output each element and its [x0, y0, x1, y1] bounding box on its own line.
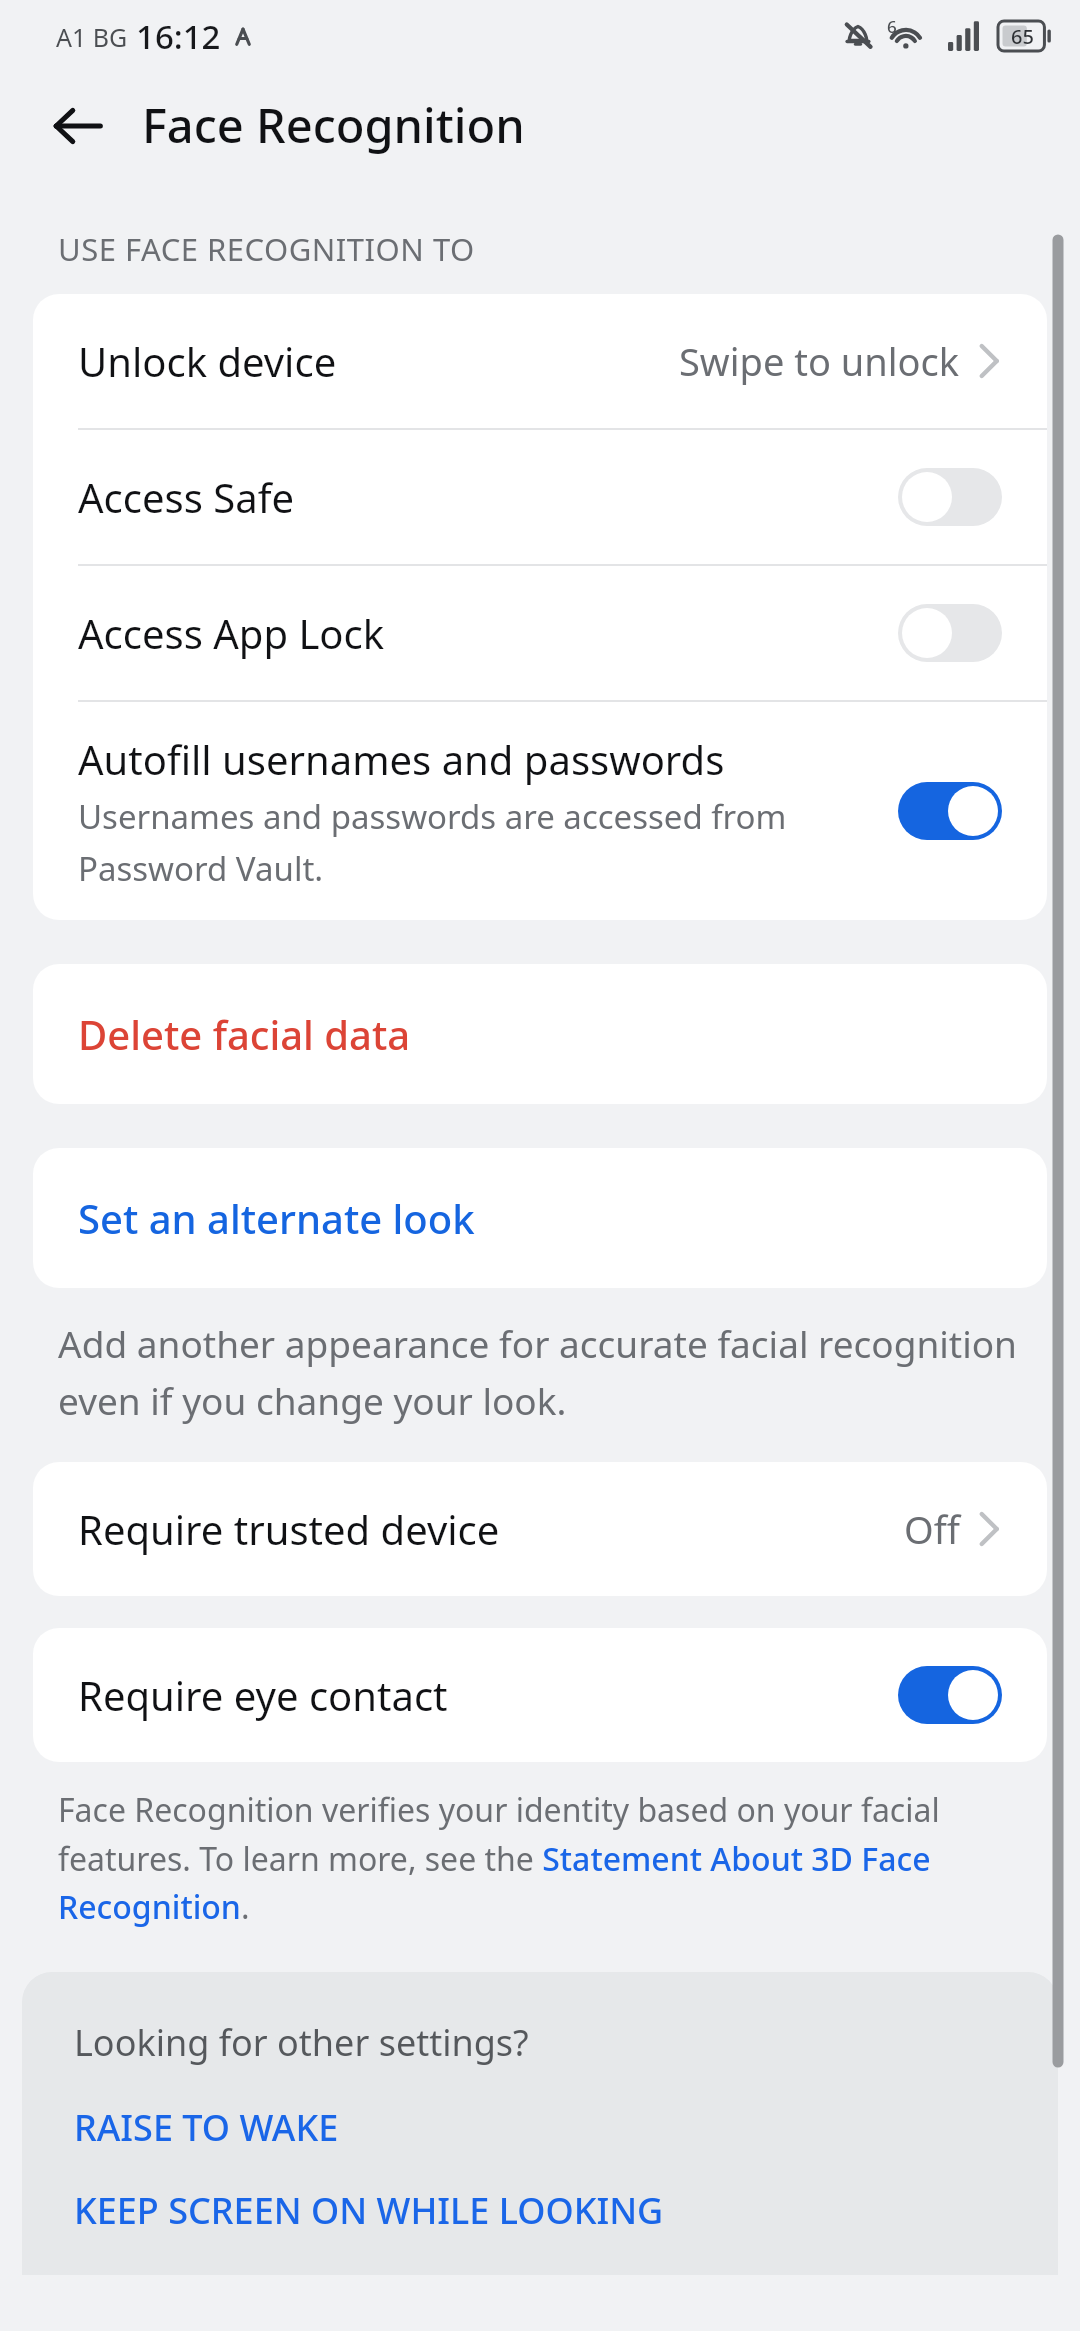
staticText: 16:12: [136, 14, 221, 59]
button[interactable]: KEEP SCREEN ON WHILE LOOKING: [74, 2186, 664, 2235]
staticText: RAISE TO WAKE: [74, 2103, 339, 2152]
staticText: Face Recognition verifies your identity …: [58, 1788, 1022, 1928]
staticText: Swipe to unlock: [679, 335, 960, 387]
staticText: A1 BG: [56, 20, 128, 54]
button[interactable]: Unlock device: [33, 294, 1047, 428]
button[interactable]: Toggle off: [898, 604, 1002, 662]
staticText: Set an alternate look: [78, 1191, 475, 1245]
button[interactable]: Toggle off: [898, 468, 1002, 526]
staticText: 65: [1011, 23, 1034, 50]
button[interactable]: Require trusted device: [33, 1462, 1047, 1596]
staticText: Delete facial data: [78, 1007, 411, 1061]
button[interactable]: Toggle on: [898, 782, 1002, 840]
staticText: Require trusted device: [78, 1502, 500, 1556]
button[interactable]: Back: [42, 89, 114, 161]
button[interactable]: Set an alternate look: [33, 1148, 1047, 1288]
staticText: Autofill usernames and passwords: [78, 732, 725, 786]
button[interactable]: Access Safe: [33, 430, 1047, 564]
button[interactable]: Delete facial data: [33, 964, 1047, 1104]
staticText: Access Safe: [78, 470, 294, 524]
button[interactable]: Access App Lock: [33, 566, 1047, 700]
button[interactable]: Toggle on: [898, 1666, 1002, 1724]
staticText: KEEP SCREEN ON WHILE LOOKING: [74, 2186, 664, 2235]
staticText: Access App Lock: [78, 606, 385, 660]
staticText: Off: [904, 1503, 960, 1555]
button[interactable]: RAISE TO WAKE: [74, 2103, 339, 2152]
staticText: Unlock device: [78, 334, 337, 388]
staticText: Face Recognition: [142, 93, 525, 157]
staticText: Require eye contact: [78, 1668, 448, 1722]
staticText: Add another appearance for accurate faci…: [58, 1318, 1022, 1426]
staticText: Usernames and passwords are accessed fro…: [78, 794, 872, 890]
staticText: Looking for other settings?: [74, 2018, 529, 2067]
button[interactable]: Autofill usernames and passwords: [33, 702, 1047, 920]
button[interactable]: Require eye contact: [33, 1628, 1047, 1762]
staticText: USE FACE RECOGNITION TO: [58, 228, 475, 270]
staticText: 6: [887, 15, 897, 38]
